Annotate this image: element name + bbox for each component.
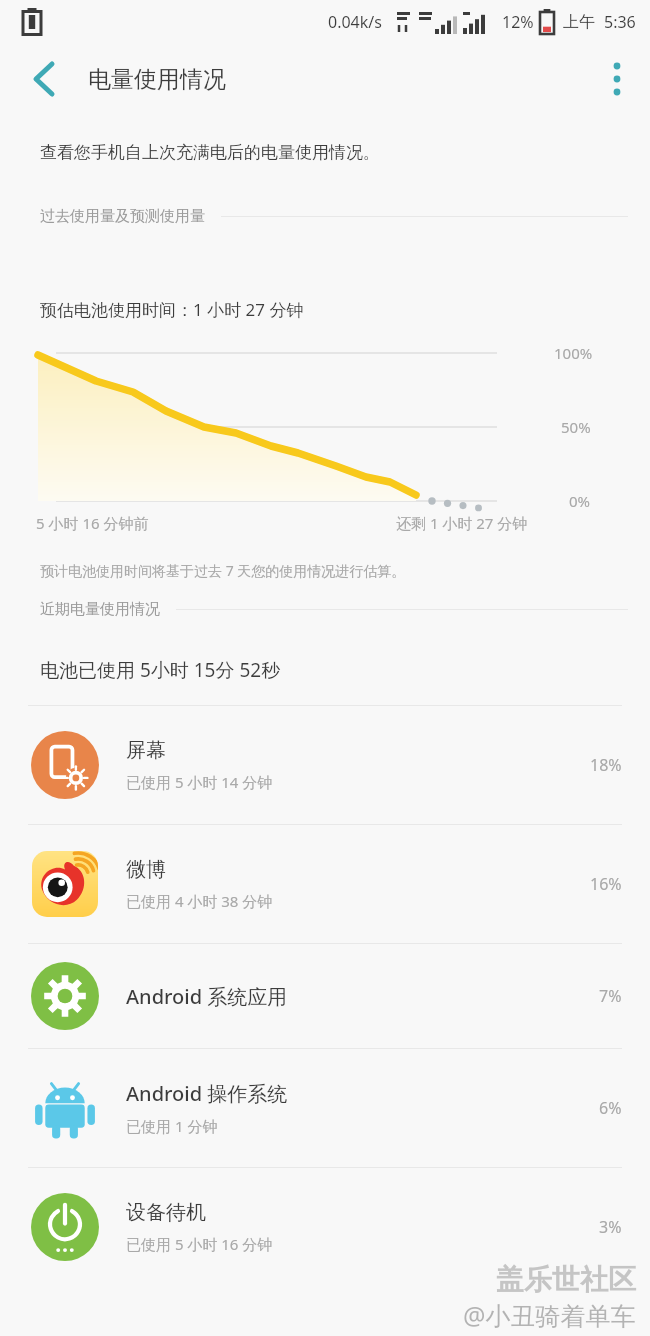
staticText: 屏幕 bbox=[126, 738, 166, 763]
staticText: 0% bbox=[569, 491, 591, 511]
staticText: 12% bbox=[502, 11, 534, 33]
staticText: 50% bbox=[561, 417, 591, 437]
staticText: 18% bbox=[590, 754, 622, 776]
staticText: 电量使用情况 bbox=[88, 65, 226, 94]
staticText: 过去使用量及预测使用量 bbox=[40, 207, 205, 226]
staticText: 预计电池使用时间将基于过去 7 天您的使用情况进行估算。 bbox=[40, 561, 406, 580]
staticText: 电池已使用 5小时 15分 52秒 bbox=[40, 657, 281, 683]
staticText: 5 小时 16 分钟前 bbox=[36, 513, 149, 533]
staticText: 上午 bbox=[563, 12, 595, 32]
button[interactable]: 设备待机 bbox=[0, 1168, 650, 1286]
button[interactable]: More options bbox=[588, 50, 646, 108]
staticText: 预估电池使用时间：1 小时 27 分钟 bbox=[40, 298, 304, 321]
staticText: @小丑骑着单车 bbox=[463, 1298, 636, 1332]
button[interactable]: Android 操作系统 bbox=[0, 1049, 650, 1167]
staticText: 已使用 5 小时 14 分钟 bbox=[126, 772, 273, 792]
staticText: 微博 bbox=[126, 857, 166, 882]
staticText: 查看您手机自上次充满电后的电量使用情况。 bbox=[40, 142, 380, 163]
staticText: 已使用 4 小时 38 分钟 bbox=[126, 891, 273, 911]
staticText: 100% bbox=[554, 343, 593, 363]
button[interactable]: Back bbox=[14, 49, 74, 109]
staticText: 近期电量使用情况 bbox=[40, 600, 160, 619]
staticText: 还剩 1 小时 27 分钟 bbox=[396, 513, 528, 533]
staticText: 0.04k/s bbox=[328, 11, 382, 33]
staticText: 3% bbox=[599, 1216, 622, 1238]
staticText: 7% bbox=[599, 985, 622, 1007]
staticText: 盖乐世社区 bbox=[496, 1262, 636, 1297]
staticText: Android 系统应用 bbox=[126, 983, 288, 1010]
button[interactable]: 屏幕 bbox=[0, 706, 650, 824]
button[interactable]: 微博 bbox=[0, 825, 650, 943]
staticText: 已使用 1 分钟 bbox=[126, 1116, 218, 1136]
staticText: Android 操作系统 bbox=[126, 1080, 288, 1107]
staticText: 16% bbox=[590, 873, 622, 895]
button[interactable]: Android 系统应用 bbox=[0, 944, 650, 1048]
staticText: 设备待机 bbox=[126, 1200, 206, 1225]
staticText: 5:36 bbox=[604, 11, 636, 33]
staticText: 6% bbox=[599, 1097, 622, 1119]
staticText: 已使用 5 小时 16 分钟 bbox=[126, 1234, 273, 1254]
